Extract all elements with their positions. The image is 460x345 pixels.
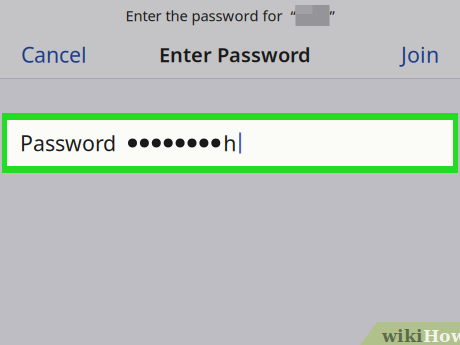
- staticText: wiki: [382, 326, 423, 345]
- button[interactable]: Cancel: [0, 31, 108, 78]
- button[interactable]: Join: [380, 31, 460, 78]
- staticText: Join: [401, 40, 439, 69]
- staticText: How: [423, 326, 460, 345]
- staticText: ”: [329, 6, 334, 25]
- staticText: Enter Password: [159, 41, 311, 68]
- button[interactable]: Password: [0, 113, 460, 173]
- staticText: Password: [20, 129, 116, 157]
- staticText: Cancel: [21, 40, 87, 69]
- staticText: h: [223, 129, 236, 157]
- staticText: Enter the password for “: [125, 6, 295, 25]
